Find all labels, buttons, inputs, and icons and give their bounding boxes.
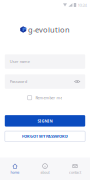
staticText: contact (69, 170, 81, 175)
staticText: FORGOT MY PASSWORD (22, 134, 68, 139)
button[interactable]: contact (60, 158, 90, 180)
button[interactable]: Remember me (28, 95, 62, 101)
button[interactable]: SIGNIN (5, 115, 85, 127)
staticText: g-evolution (28, 24, 70, 35)
button[interactable]: home (0, 158, 30, 180)
button[interactable]: Show password (74, 79, 80, 83)
staticText: Remember me (35, 95, 62, 100)
staticText: SIGNIN (37, 118, 52, 123)
button[interactable]: FORGOT MY PASSWORD (5, 131, 85, 142)
staticText: Password (10, 79, 27, 84)
staticText: home (10, 170, 19, 175)
staticText: about (40, 170, 49, 175)
staticText: 10:24 (78, 2, 87, 8)
staticText: User name (10, 59, 30, 64)
button[interactable]: about (30, 158, 60, 180)
